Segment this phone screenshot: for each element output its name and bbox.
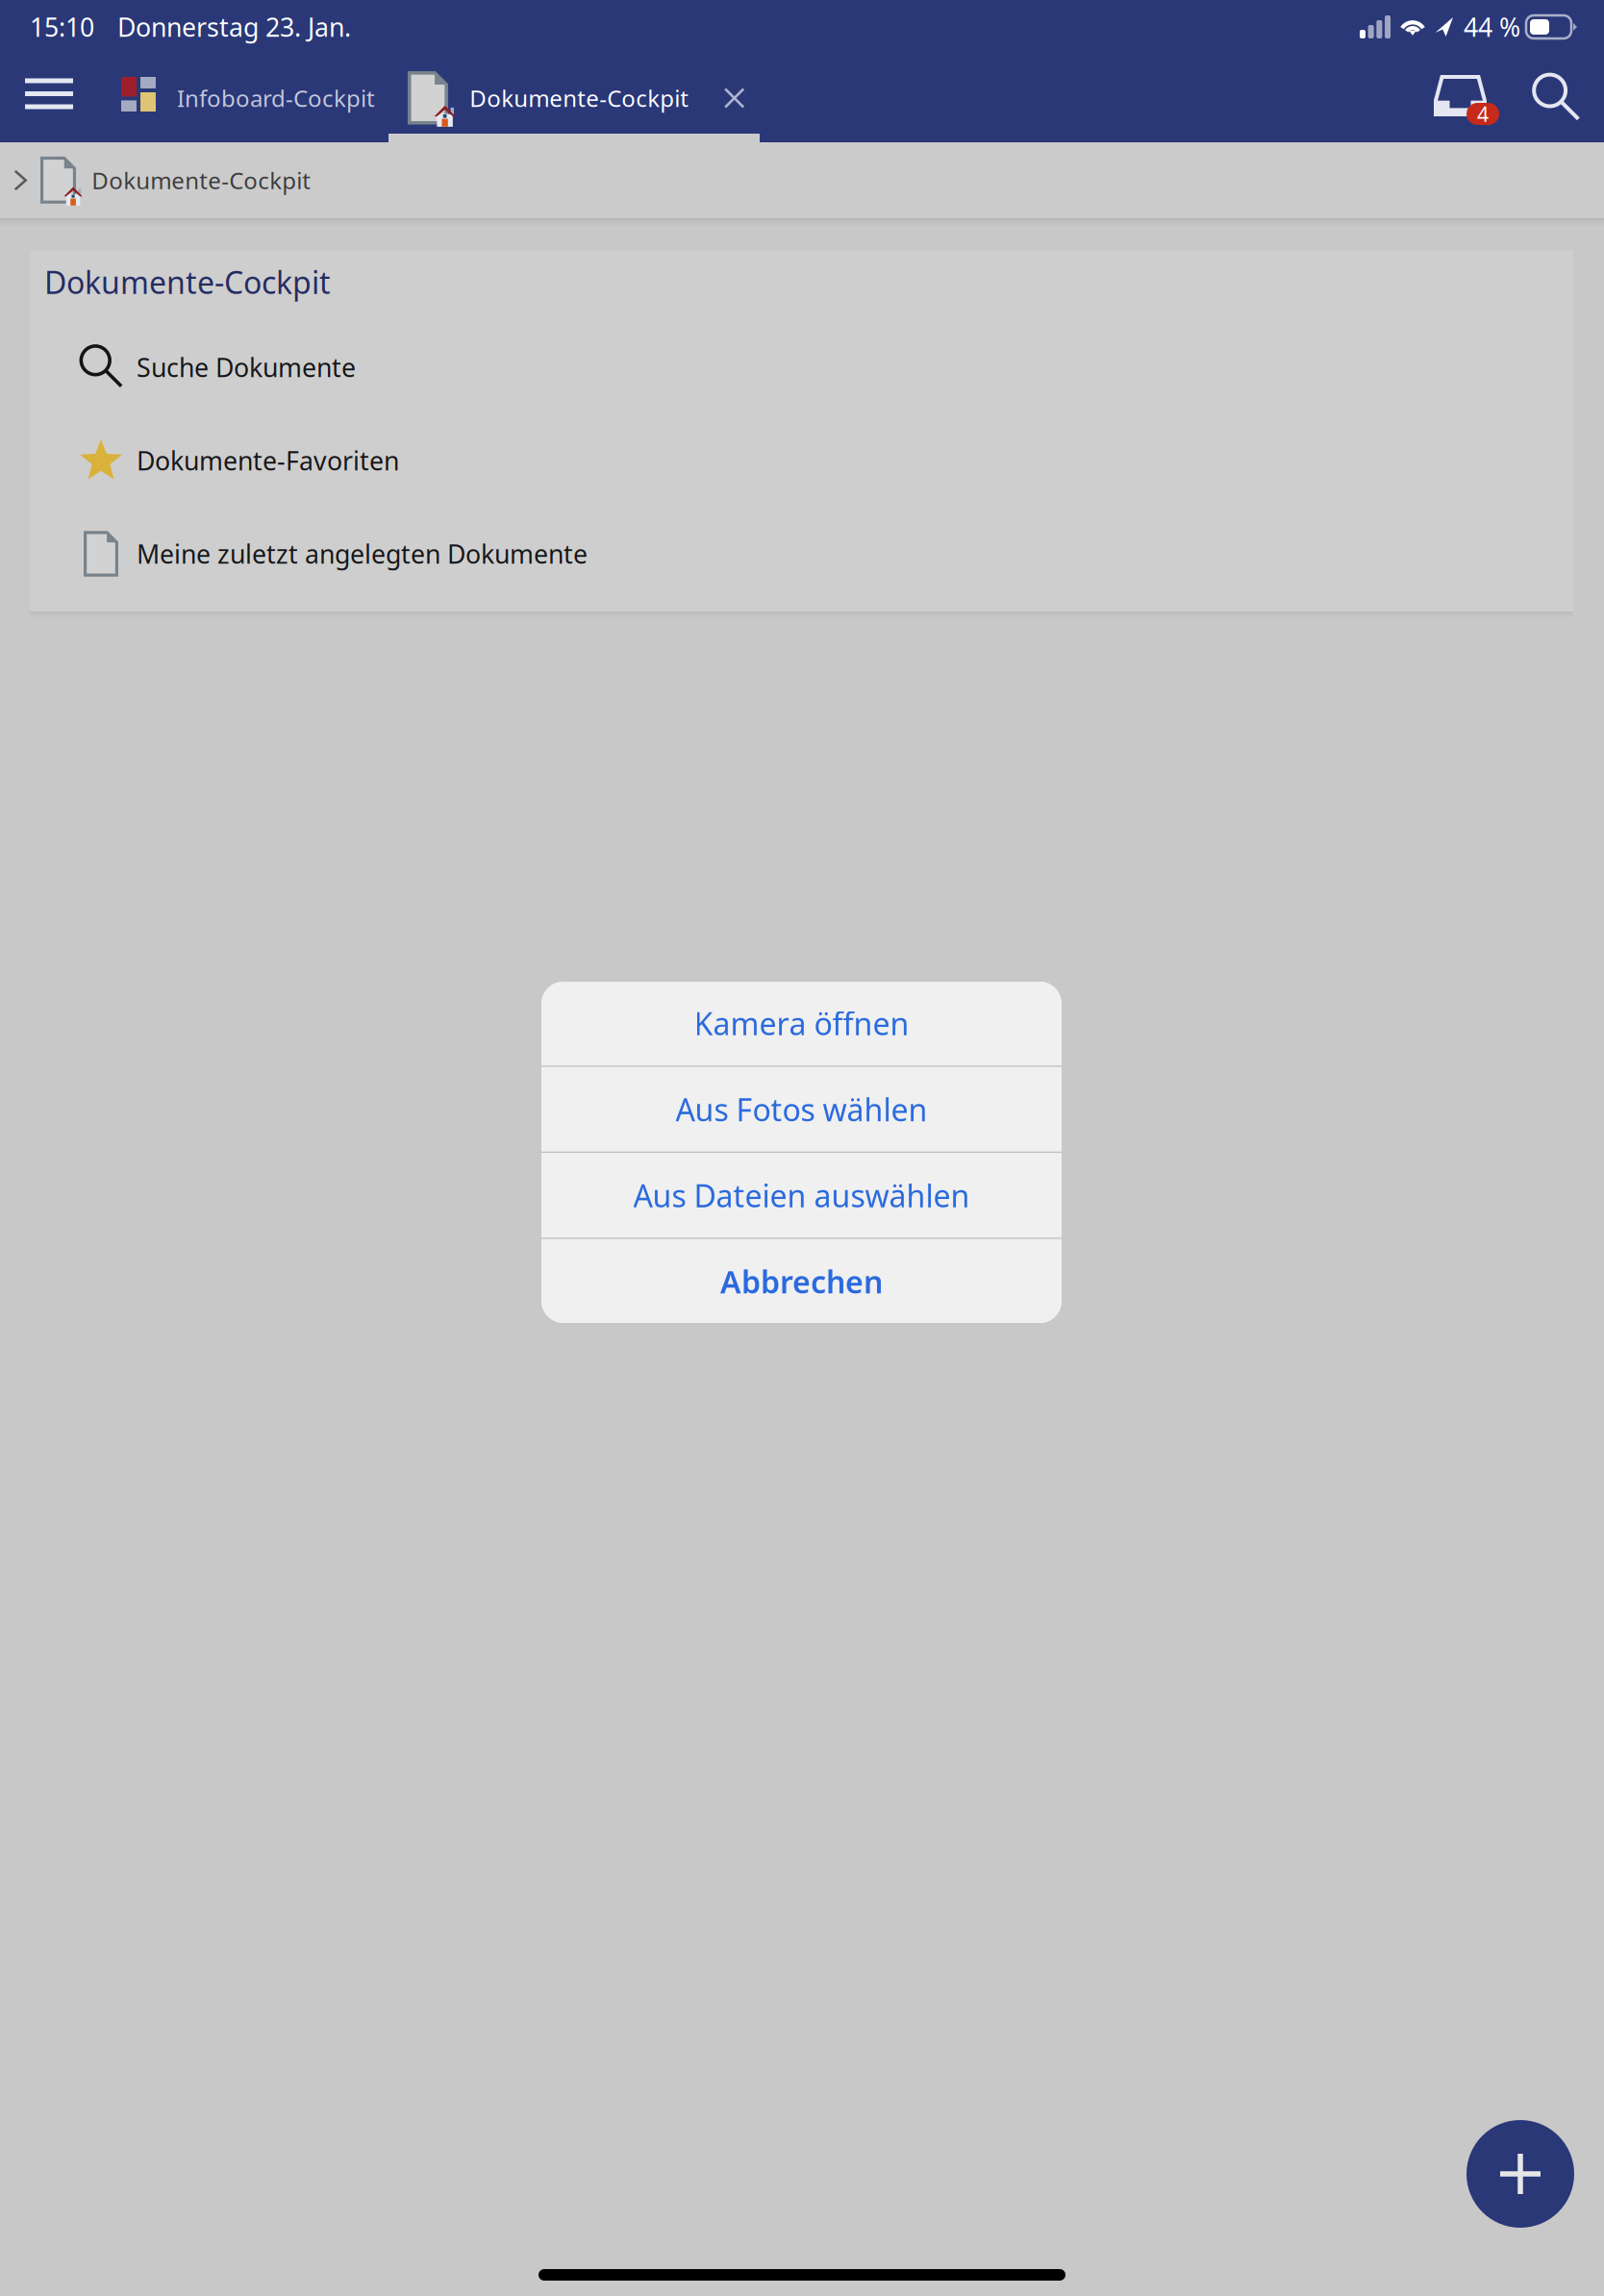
- button[interactable]: Suchen: [1521, 54, 1591, 142]
- button[interactable]: Meine zuletzt angelegten Dokumente: [30, 507, 1573, 600]
- staticText: Dokumente-Cockpit: [469, 83, 689, 113]
- button[interactable]: Posteingang, 4 neue: [1434, 54, 1521, 142]
- staticText: Dokumente-Favoriten: [137, 444, 399, 478]
- button[interactable]: Aus Fotos wählen: [541, 1067, 1062, 1152]
- staticText: Meine zuletzt angelegten Dokumente: [137, 537, 588, 571]
- staticText: 4: [1477, 100, 1489, 127]
- staticText: Abbrechen: [720, 1261, 883, 1302]
- button[interactable]: Neu erstellen: [1466, 2120, 1574, 2228]
- staticText: Aus Fotos wählen: [676, 1089, 927, 1130]
- button[interactable]: Dokumente-Favoriten: [30, 414, 1573, 507]
- button[interactable]: Dokumente-Cockpit: [0, 142, 1604, 218]
- staticText: 15:10: [30, 10, 94, 44]
- staticText: 44 %: [1464, 10, 1520, 44]
- button[interactable]: Suche Dokumente: [30, 321, 1573, 414]
- button[interactable]: Dokumente-Cockpit: [400, 54, 689, 142]
- staticText: Aus Dateien auswählen: [633, 1175, 970, 1216]
- button[interactable]: Kamera öffnen: [541, 981, 1062, 1066]
- staticText: Infoboard-Cockpit: [177, 83, 375, 113]
- button[interactable]: Menü: [0, 54, 98, 142]
- staticText: Suche Dokumente: [137, 350, 356, 384]
- button[interactable]: Abbrechen: [541, 1239, 1062, 1324]
- button[interactable]: Tab schließen: [689, 54, 765, 142]
- staticText: Dokumente-Cockpit: [92, 165, 311, 196]
- staticText: Donnerstag 23. Jan.: [117, 10, 351, 44]
- button[interactable]: Infoboard-Cockpit: [98, 54, 400, 142]
- staticText: Kamera öffnen: [694, 1003, 909, 1044]
- button[interactable]: Aus Dateien auswählen: [541, 1153, 1062, 1238]
- staticText: Dokumente-Cockpit: [44, 262, 331, 302]
